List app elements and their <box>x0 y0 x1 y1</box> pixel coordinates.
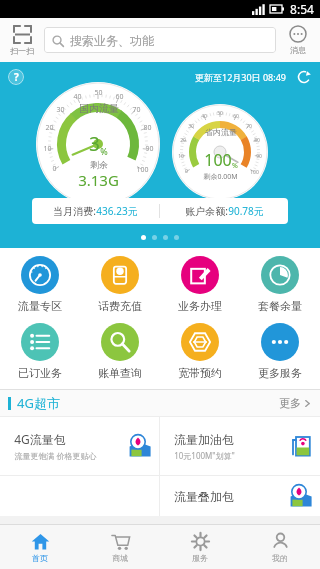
staticText: 3.13G <box>78 170 119 190</box>
staticText: % <box>100 145 108 157</box>
staticText: 剩余0.00M <box>203 172 238 182</box>
button[interactable]: 消息 <box>276 18 320 62</box>
staticText: 流量叠加包 <box>174 489 234 504</box>
button[interactable]: 宽带预约 <box>160 323 240 380</box>
staticText: 话费充值 <box>98 299 142 313</box>
staticText: 70 <box>246 123 252 130</box>
staticText: 账户余额: <box>185 204 228 218</box>
button[interactable]: 当月消费: <box>32 198 288 224</box>
staticText: 首页 <box>32 553 48 563</box>
staticText: 服务 <box>192 553 208 563</box>
staticText: 80 <box>254 137 260 144</box>
button[interactable]: 账单查询 <box>80 323 160 380</box>
staticText: 更多服务 <box>258 366 302 380</box>
staticText: 50 <box>94 88 103 98</box>
button[interactable]: 服务 <box>160 525 240 569</box>
button[interactable]: 流量专区 <box>0 256 80 313</box>
staticText: 100 <box>204 149 232 171</box>
staticText: 10 <box>43 144 52 154</box>
staticText: 90 <box>256 153 262 160</box>
staticText: ? <box>14 70 19 84</box>
staticText: 8:54 <box>290 1 314 17</box>
staticText: 0 <box>52 164 57 174</box>
staticText: 10元100M"划算" <box>174 450 235 461</box>
staticText: 3 <box>89 131 100 157</box>
button[interactable]: 更多服务 <box>240 323 320 380</box>
staticText: 国内流量 <box>79 102 119 115</box>
staticText: 当月消费: <box>53 204 96 218</box>
staticText: 100 <box>136 165 149 175</box>
staticText: 套餐余量 <box>258 299 302 313</box>
staticText: 20 <box>45 123 54 133</box>
staticText: 60 <box>233 113 239 120</box>
staticText: 省内流量 <box>205 127 237 137</box>
staticText: 搜索业务、功能 <box>70 33 154 48</box>
button[interactable]: 我的 <box>240 525 320 569</box>
staticText: 商城 <box>112 553 128 563</box>
staticText: 90.78元 <box>228 204 264 218</box>
staticText: 70 <box>132 105 141 115</box>
staticText: 流量更饱满 价格更贴心 <box>14 450 97 461</box>
staticText: 宽带预约 <box>178 366 222 380</box>
button[interactable]: 流量加油包 <box>160 417 320 475</box>
staticText: 100 <box>250 169 259 176</box>
button[interactable]: 套餐余量 <box>240 256 320 313</box>
staticText: 流量加油包 <box>174 432 234 447</box>
staticText: 50 <box>217 110 223 117</box>
staticText: 90 <box>145 144 154 154</box>
staticText: 20 <box>180 137 186 144</box>
staticText: 0 <box>185 168 188 175</box>
staticText: 40 <box>73 92 82 102</box>
staticText: 30 <box>56 105 65 115</box>
button[interactable]: 已订业务 <box>0 323 80 380</box>
button[interactable]: 搜索业务、功能 <box>44 27 276 53</box>
button[interactable]: 业务办理 <box>160 256 240 313</box>
staticText: 扫一扫 <box>10 46 34 56</box>
staticText: 已订业务 <box>18 366 62 380</box>
staticText: 更新至12月30日 08:49 <box>195 71 286 83</box>
staticText: 账单查询 <box>98 366 142 380</box>
staticText: 80 <box>143 123 152 133</box>
staticText: 30 <box>188 123 194 130</box>
staticText: 我的 <box>272 553 288 563</box>
staticText: 更多 <box>279 396 301 410</box>
staticText: 4G流量包 <box>14 431 66 447</box>
button[interactable]: 话费充值 <box>80 256 160 313</box>
button[interactable]: 首页 <box>0 525 80 569</box>
staticText: 4G超市 <box>17 394 60 412</box>
staticText: 消息 <box>290 45 306 55</box>
staticText: 40 <box>201 113 207 120</box>
staticText: 业务办理 <box>178 299 222 313</box>
staticText: % <box>232 161 238 171</box>
button[interactable]: 商城 <box>80 525 160 569</box>
button[interactable]: 更多 <box>279 396 312 410</box>
staticText: 10 <box>178 153 184 160</box>
staticText: 剩余 <box>90 159 108 170</box>
button[interactable]: 刷新 <box>296 69 312 85</box>
staticText: 436.23元 <box>96 204 138 218</box>
button[interactable]: 流量叠加包 <box>160 476 320 516</box>
staticText: 60 <box>115 92 124 102</box>
staticText: 流量专区 <box>18 299 62 313</box>
button[interactable]: 帮助 <box>8 69 24 85</box>
button[interactable]: 4G流量包 <box>0 417 159 475</box>
button[interactable]: 扫一扫 <box>0 18 44 62</box>
